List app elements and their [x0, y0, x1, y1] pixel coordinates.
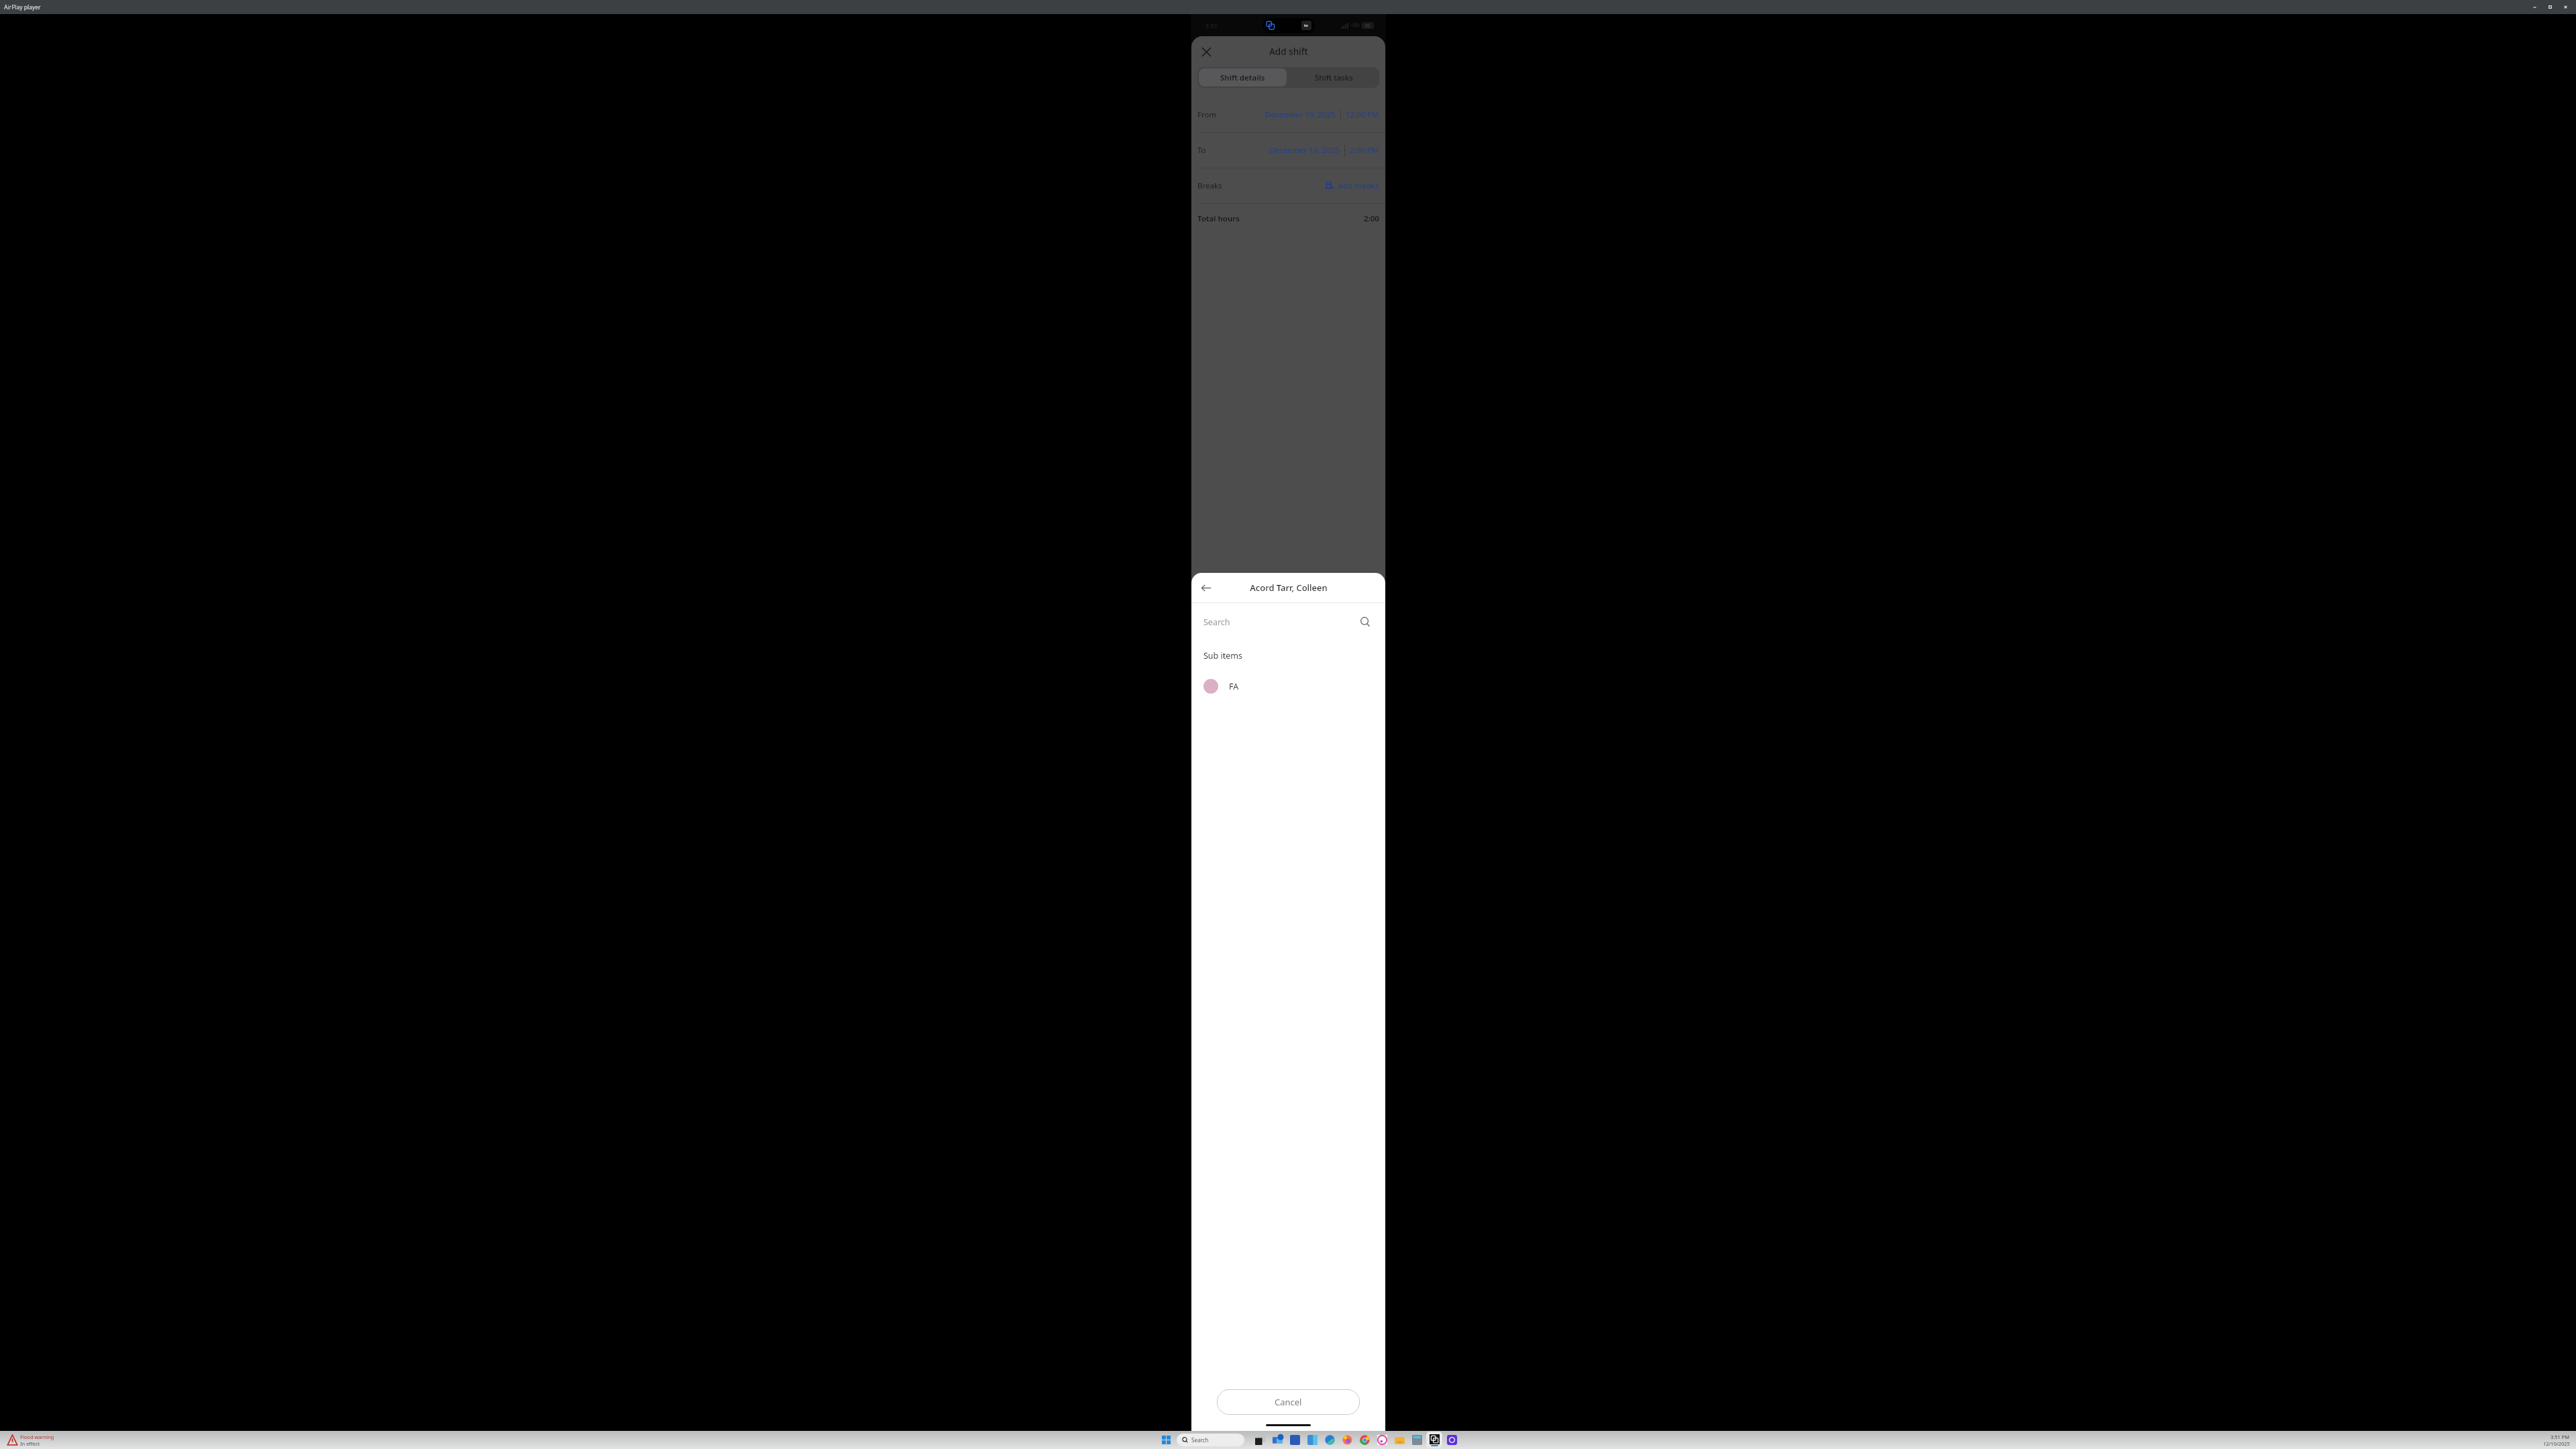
button[interactable]: Shift details [1199, 68, 1287, 87]
staticText: AirPlay player [4, 3, 41, 11]
staticText: Cancel [1275, 1396, 1302, 1408]
staticText: Sub items [1203, 650, 1242, 661]
button[interactable]: Firefox [1339, 1432, 1355, 1448]
staticText: Shift details [1220, 72, 1265, 83]
button[interactable]: Search [1203, 603, 1373, 641]
staticText: 2:00 [1364, 213, 1379, 224]
button[interactable]: iTunes [1374, 1432, 1390, 1448]
staticText: In effect [20, 1440, 40, 1447]
staticText: 12:00 PM [1346, 109, 1379, 120]
staticText: December 10, 2025 [1269, 145, 1340, 156]
staticText: 95 [1365, 23, 1371, 29]
button[interactable]: Close [2558, 1, 2573, 13]
other: Search [1357, 614, 1373, 630]
staticText: From [1197, 109, 1217, 120]
button[interactable]: File Explorer [1391, 1432, 1407, 1448]
button[interactable]: Grammarly [1444, 1432, 1460, 1448]
staticText: 2:00 PM [1350, 145, 1379, 156]
button[interactable]: Flood warning [7, 1434, 54, 1447]
button[interactable]: Maximize [2542, 1, 2558, 13]
staticText: To [1197, 145, 1206, 156]
button[interactable]: Word [1287, 1432, 1303, 1448]
staticText: tv [1304, 23, 1309, 28]
button[interactable]: Google Chrome [1356, 1432, 1373, 1448]
button[interactable]: Shift tasks [1288, 67, 1379, 88]
staticText: Breaks [1197, 180, 1222, 191]
button[interactable]: Close [1196, 42, 1216, 62]
staticText: Flood warning [20, 1434, 54, 1440]
button[interactable]: Cancel [1217, 1389, 1360, 1415]
button[interactable]: Breaks [1197, 168, 1379, 203]
button[interactable]: Start [1157, 1431, 1175, 1449]
button[interactable]: FA [1203, 673, 1373, 700]
button[interactable]: From [1197, 97, 1379, 132]
staticText: Shift tasks [1315, 72, 1353, 83]
button[interactable]: To [1197, 133, 1379, 168]
button[interactable]: Microsoft Edge [1322, 1432, 1338, 1448]
staticText: Search [1191, 1436, 1209, 1444]
staticText: 3:51 PM [2551, 1434, 2570, 1440]
staticText: December 10, 2025 [1265, 109, 1336, 120]
staticText: Total hours [1197, 213, 1240, 224]
button[interactable]: Back [1195, 578, 1216, 598]
staticText: Acord Tarr, Colleen [1250, 582, 1328, 594]
staticText: Add shift [1269, 46, 1308, 58]
staticText: Search [1203, 616, 1230, 628]
button[interactable]: 3:51 PM [2543, 1434, 2570, 1447]
button[interactable]: Outlook [1269, 1432, 1285, 1448]
button[interactable]: Word document [1304, 1432, 1320, 1448]
button[interactable]: Search [1177, 1434, 1244, 1446]
staticText: FA [1229, 681, 1239, 692]
button[interactable]: AirPlay player [1426, 1432, 1442, 1448]
button[interactable]: Calculator [1409, 1432, 1425, 1448]
staticText: Add breaks [1338, 180, 1379, 191]
button[interactable]: Task view [1252, 1432, 1268, 1448]
staticText: 3:51 [1205, 21, 1218, 30]
button[interactable]: Minimize [2527, 1, 2542, 13]
staticText: 12/10/2025 [2543, 1440, 2570, 1447]
